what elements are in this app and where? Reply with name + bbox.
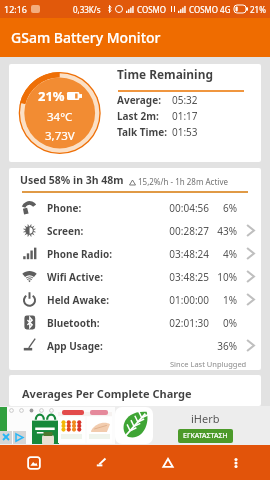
staticText: Bluetooth: <box>47 316 100 330</box>
staticText: Held Awake: <box>47 293 109 307</box>
staticText: Averages Per Complete Charge <box>22 386 192 401</box>
button[interactable]: Back <box>67 445 134 480</box>
button[interactable]: Phone Radio: <box>9 242 261 265</box>
staticText: 21% <box>38 87 65 105</box>
staticText: iHerb <box>191 411 220 426</box>
staticText: Talk Time: <box>117 125 172 139</box>
staticText: 6% <box>211 201 237 215</box>
staticText: 3,73V <box>45 128 75 144</box>
staticText: Phone: <box>47 201 82 215</box>
staticText: 01:53 <box>172 125 198 139</box>
staticText: Time Remaining <box>117 66 213 82</box>
staticText: Since Last Unplugged <box>170 359 247 369</box>
button[interactable]: App Usage: <box>9 334 261 357</box>
staticText: Average: <box>117 93 172 107</box>
staticText: Wifi Active: <box>47 270 104 284</box>
staticText: 01:00:00 <box>154 293 209 307</box>
button[interactable]: iHerb <box>0 406 270 445</box>
staticText: Used 58% in 3h 48m <box>20 173 124 187</box>
staticText: App Usage: <box>47 339 103 353</box>
button[interactable]: Bluetooth: <box>9 311 261 334</box>
button[interactable]: Held Awake: <box>9 288 261 311</box>
staticText: ΕΓΚΑΤΑΣΤΑΣΗ <box>183 431 228 441</box>
staticText: 15,2%/h - 1h 28m Active <box>138 176 228 187</box>
button[interactable]: Home <box>134 445 202 480</box>
button[interactable]: Recent apps <box>0 445 67 480</box>
staticText: 00:04:56 <box>154 201 209 215</box>
staticText: COSMO 4G <box>189 4 231 15</box>
staticText: 21% <box>250 4 266 15</box>
staticText: 03:48:24 <box>154 247 209 261</box>
staticText: Screen: <box>47 224 84 238</box>
staticText: 0% <box>211 316 237 330</box>
staticText: 43% <box>211 224 237 238</box>
staticText: 34°C <box>47 109 73 125</box>
staticText: 4% <box>211 247 237 261</box>
staticText: 03:48:25 <box>154 270 209 284</box>
button[interactable]: GSam Battery Monitor <box>0 18 270 57</box>
button[interactable]: Phone: <box>9 196 261 219</box>
staticText: 02:01:30 <box>154 316 209 330</box>
staticText: 10% <box>211 270 237 284</box>
staticText: Last 2m: <box>117 109 172 123</box>
staticText: 05:32 <box>172 93 198 107</box>
staticText: 0,33K/s <box>73 4 101 15</box>
staticText: GSam Battery Monitor <box>11 28 161 47</box>
staticText: Phone Radio: <box>47 247 112 261</box>
staticText: 12:16 <box>4 3 28 15</box>
staticText: 01:17 <box>172 109 198 123</box>
staticText: 1% <box>211 293 237 307</box>
staticText: 36% <box>211 339 237 353</box>
staticText: COSMO <box>137 4 167 15</box>
staticText: 00:28:27 <box>154 224 209 238</box>
button[interactable]: Screen: <box>9 219 261 242</box>
button[interactable]: Wifi Active: <box>9 265 261 288</box>
button[interactable]: More options <box>202 445 270 480</box>
